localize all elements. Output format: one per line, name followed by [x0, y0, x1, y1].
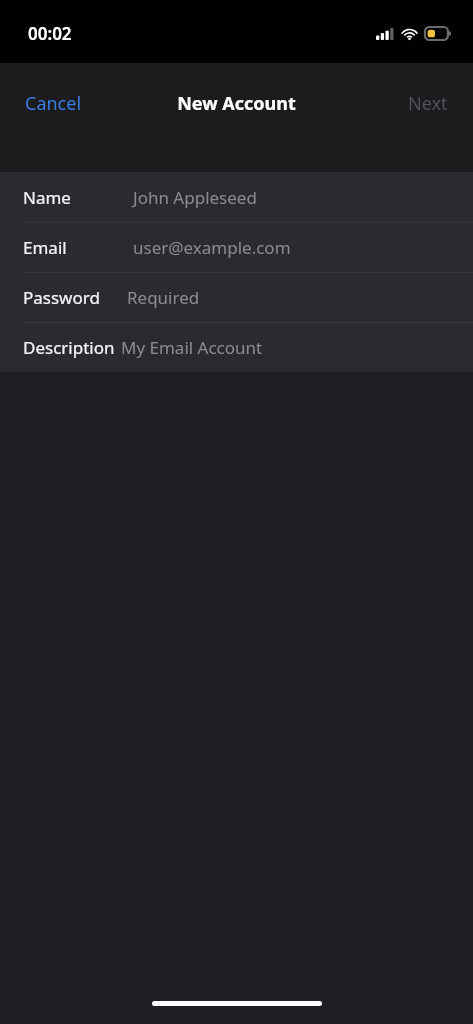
staticText: 00:02	[28, 22, 72, 45]
button[interactable]: Cancel	[0, 83, 107, 124]
staticText: New Account	[177, 91, 296, 116]
staticText: Cancel	[25, 91, 82, 116]
staticText: Email	[23, 236, 67, 259]
staticText: Required	[127, 286, 200, 309]
staticText: John Appleseed	[133, 186, 257, 209]
button[interactable]: Password	[0, 273, 473, 322]
staticText: user@example.com	[133, 236, 291, 259]
button[interactable]: Name	[0, 172, 473, 222]
staticText: Name	[23, 186, 71, 209]
staticText: Description	[23, 336, 115, 359]
staticText: My Email Account	[121, 336, 263, 359]
button[interactable]: Next	[383, 83, 473, 124]
staticText: Next	[408, 91, 448, 116]
button[interactable]: Email	[0, 223, 473, 272]
button[interactable]: Description	[0, 323, 473, 372]
staticText: Password	[23, 286, 100, 309]
